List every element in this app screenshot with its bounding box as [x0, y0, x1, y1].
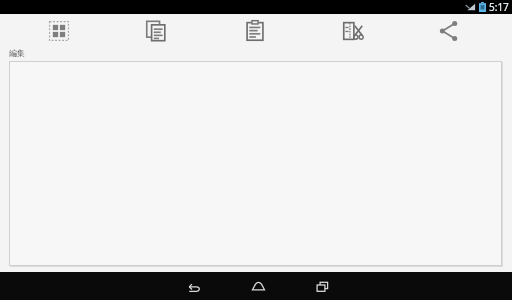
button[interactable]: Recent apps	[309, 273, 335, 299]
button[interactable]: Copy	[139, 15, 173, 47]
button[interactable]: Select all	[42, 15, 76, 47]
button[interactable]: Back	[180, 273, 206, 299]
button[interactable]: Share	[432, 15, 466, 47]
staticText: 5:17	[489, 0, 509, 14]
button[interactable]: Cut	[336, 15, 370, 47]
button[interactable]: Home	[245, 273, 271, 299]
button[interactable]: Paste	[238, 15, 272, 47]
staticText: 編集	[9, 48, 25, 58]
